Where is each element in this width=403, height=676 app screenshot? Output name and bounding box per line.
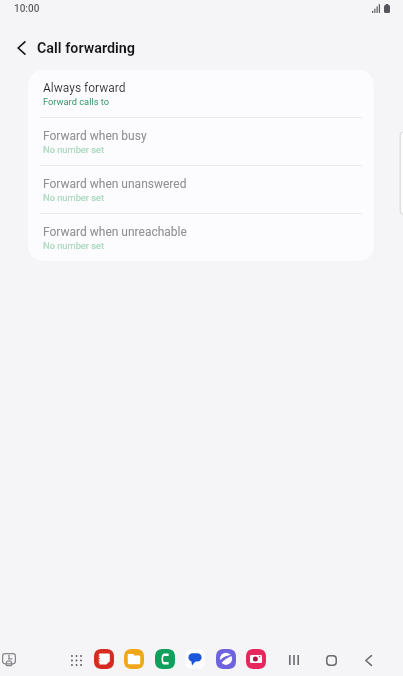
staticText: Forward when unanswered xyxy=(43,177,187,191)
button[interactable]: Screen time xyxy=(0,644,24,674)
staticText: No number set xyxy=(43,192,105,203)
button[interactable]: Samsung Notes xyxy=(94,649,114,669)
staticText: No number set xyxy=(43,144,105,155)
button[interactable]: Back xyxy=(349,641,388,676)
button[interactable]: Messages xyxy=(185,649,205,669)
staticText: Forward when busy xyxy=(43,129,147,143)
staticText: Forward when unreachable xyxy=(43,225,187,239)
button[interactable]: Forward when busy xyxy=(28,118,374,165)
staticText: 10:00 xyxy=(14,3,40,15)
button[interactable]: Edge panel xyxy=(398,132,403,214)
button[interactable]: Phone xyxy=(155,649,175,669)
button[interactable]: Internet xyxy=(216,649,236,669)
button[interactable]: Navigate up xyxy=(0,26,38,70)
button[interactable]: My Files xyxy=(124,649,144,669)
staticText: Call forwarding xyxy=(37,40,136,57)
button[interactable]: Camera xyxy=(246,649,266,669)
button[interactable]: Home xyxy=(312,641,351,676)
button[interactable]: Forward when unanswered xyxy=(28,166,374,213)
button[interactable]: Recent apps xyxy=(274,641,313,676)
button[interactable]: All apps xyxy=(63,647,90,674)
staticText: No number set xyxy=(43,240,105,251)
button[interactable]: Forward when unreachable xyxy=(28,214,374,261)
button[interactable]: Always forward xyxy=(28,70,374,117)
staticText: Forward calls to xyxy=(43,96,110,107)
staticText: Always forward xyxy=(43,81,126,95)
